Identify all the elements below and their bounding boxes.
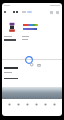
button[interactable]: Item: [26, 103, 29, 106]
button[interactable]: Cart: [37, 63, 41, 67]
button[interactable]: Back: [3, 10, 7, 14]
button[interactable]: Item: [44, 103, 47, 106]
button[interactable]: Item: [8, 103, 11, 106]
button[interactable]: Item: [35, 103, 38, 106]
button[interactable]: Search: [30, 63, 34, 67]
button[interactable]: Item: [17, 103, 20, 106]
button[interactable]: Item: [53, 103, 56, 106]
